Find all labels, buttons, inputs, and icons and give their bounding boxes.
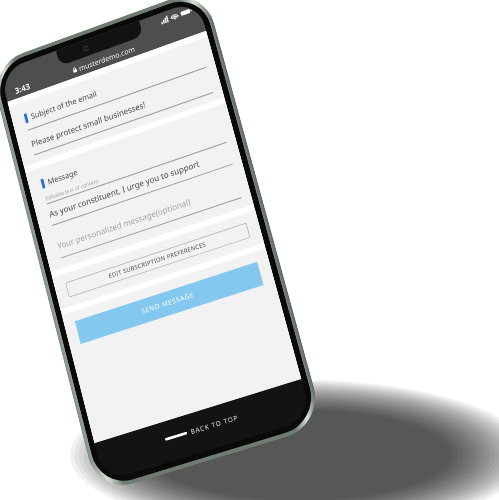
staticText: musterdemo.com xyxy=(78,44,136,73)
button[interactable]: EDIT SUBSCRIPTION PREFERENCES xyxy=(65,222,251,298)
staticText: As your constituent, I urge you to suppo… xyxy=(48,158,201,220)
staticText: BACK TO TOP xyxy=(190,413,239,436)
staticText: Your personalized message(optional) xyxy=(56,196,192,252)
button[interactable]: Back to top xyxy=(94,379,312,482)
staticText: SEND MESSAGE xyxy=(140,290,196,317)
staticText: EDIT SUBSCRIPTION PREFERENCES xyxy=(108,240,207,280)
staticText: Editable box of content xyxy=(44,177,99,202)
staticText: Please protect small businesses! xyxy=(30,99,147,150)
staticText: Subject of the email xyxy=(30,88,98,121)
staticText: Message xyxy=(46,166,79,187)
button[interactable]: SEND MESSAGE xyxy=(75,262,263,344)
staticText: 3:43 xyxy=(14,81,31,97)
